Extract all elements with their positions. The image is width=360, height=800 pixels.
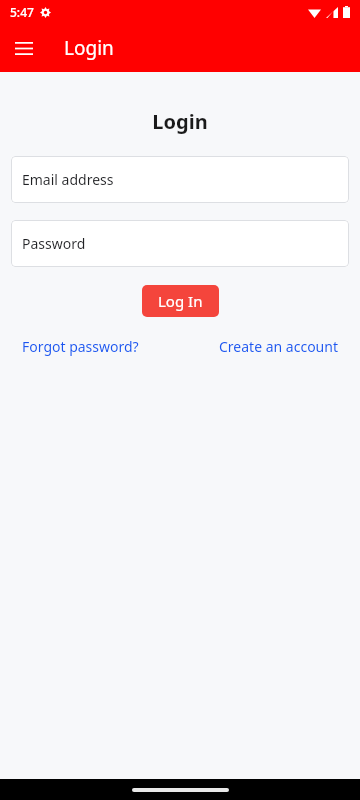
button[interactable]: Create an account [208, 333, 349, 360]
staticText: Password [22, 234, 86, 253]
staticText: Log In [158, 291, 203, 311]
staticText: Email address [22, 170, 114, 189]
button[interactable]: Forgot password? [11, 333, 150, 360]
button[interactable]: Log In [142, 285, 219, 317]
button[interactable]: Password [11, 220, 349, 267]
button[interactable]: Email address [11, 156, 349, 203]
staticText: 5:47 [10, 4, 34, 20]
staticText: Login [0, 108, 360, 135]
button[interactable]: Open navigation menu [6, 30, 42, 66]
staticText: Forgot password? [22, 337, 139, 356]
staticText: Create an account [219, 337, 338, 356]
staticText: Login [64, 35, 114, 61]
